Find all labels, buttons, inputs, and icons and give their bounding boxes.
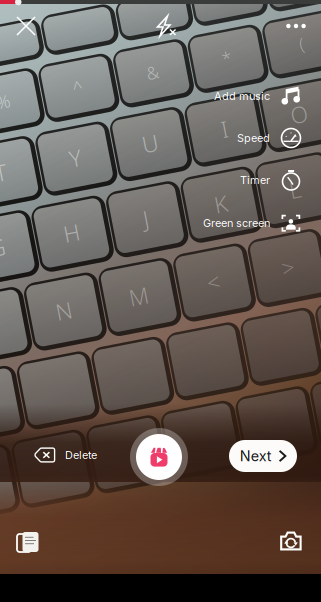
staticText: N	[50, 272, 67, 302]
staticText: Y	[93, 124, 105, 154]
staticText: %	[32, 58, 46, 81]
button[interactable]: Speed	[151, 121, 321, 155]
button[interactable]: Close	[6, 6, 46, 46]
staticText: Add music	[214, 89, 270, 103]
staticText: Speed	[237, 131, 270, 145]
staticText: <	[204, 272, 217, 302]
button[interactable]: Gallery	[9, 523, 47, 561]
staticText: H	[73, 197, 89, 227]
staticText: T	[17, 124, 29, 154]
staticText: K	[226, 197, 239, 227]
staticText: Green screen	[203, 216, 270, 230]
staticText: O	[318, 124, 321, 154]
staticText: G	[0, 197, 13, 227]
button[interactable]: Green screen	[151, 206, 321, 240]
staticText: I	[247, 124, 254, 154]
staticText: &	[185, 58, 197, 81]
button[interactable]: Timer	[151, 163, 321, 197]
staticText: Delete	[65, 448, 97, 462]
staticText: L	[303, 197, 315, 227]
button[interactable]: Next	[229, 440, 297, 472]
button[interactable]: Flip camera	[272, 522, 310, 560]
staticText: U	[167, 124, 183, 154]
button[interactable]: More options	[276, 6, 316, 46]
button[interactable]: Add music	[151, 79, 321, 113]
staticText: M	[125, 272, 145, 302]
staticText: Timer	[240, 173, 270, 187]
button[interactable]: Flash off	[146, 6, 186, 46]
staticText: *	[262, 58, 272, 81]
staticText: J	[154, 197, 160, 227]
staticText: ^	[110, 58, 120, 81]
staticText: >	[280, 272, 293, 302]
button[interactable]: Delete	[34, 435, 130, 475]
button[interactable]: Record	[130, 428, 188, 486]
staticText: Next	[240, 447, 272, 465]
